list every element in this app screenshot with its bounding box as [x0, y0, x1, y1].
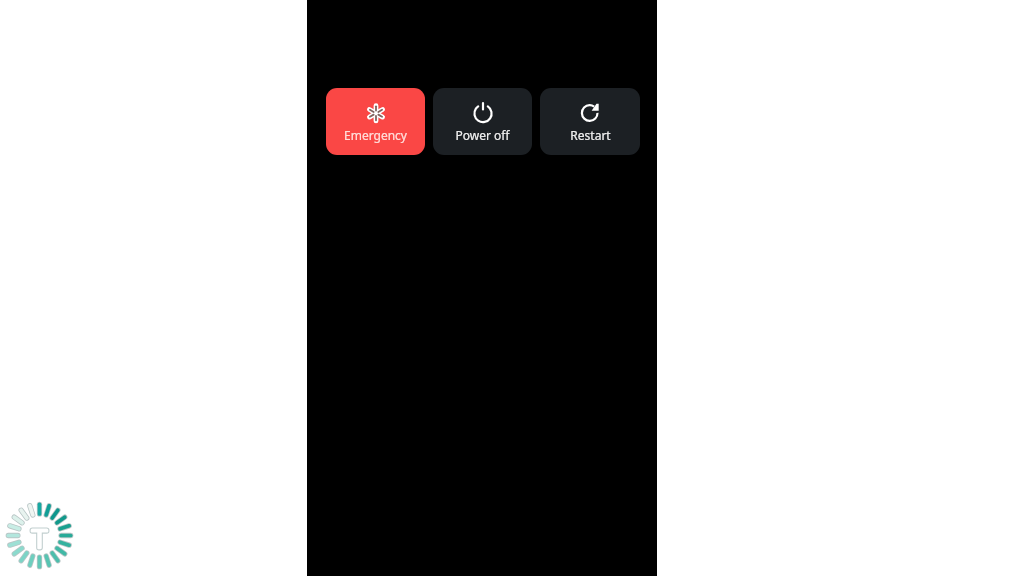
- button[interactable]: Power off: [433, 88, 532, 155]
- staticText: Emergency: [344, 127, 407, 143]
- other: Emergency: [363, 99, 389, 125]
- button[interactable]: Restart: [540, 88, 640, 155]
- other: Restart: [578, 99, 604, 125]
- staticText: Power off: [455, 127, 510, 143]
- staticText: Restart: [570, 127, 611, 143]
- button[interactable]: Emergency: [326, 88, 425, 155]
- other: Power off: [470, 99, 496, 125]
